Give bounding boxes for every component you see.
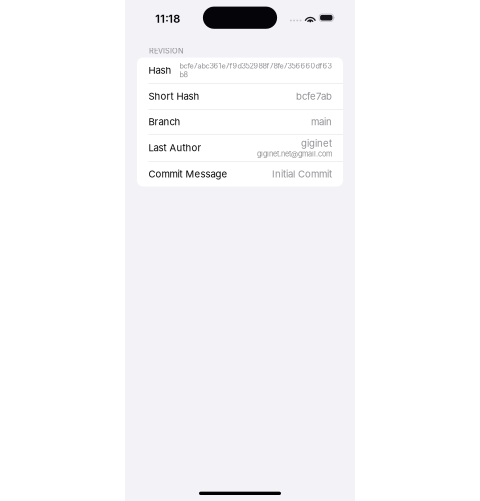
button[interactable]: Commit Message: [137, 161, 343, 186]
button[interactable]: Last Author: [137, 134, 343, 161]
button[interactable]: Branch: [137, 109, 343, 134]
staticText: REVISION: [149, 46, 184, 55]
staticText: Initial Commit: [272, 168, 332, 180]
staticText: Branch: [148, 116, 180, 128]
staticText: main: [311, 116, 332, 128]
button[interactable]: Short Hash: [137, 83, 343, 109]
staticText: Short Hash: [148, 90, 199, 102]
button[interactable]: Hash: [137, 57, 343, 83]
staticText: Hash: [148, 64, 171, 76]
staticText: bcfe7abc361e7f9d352988f78fe7356660df63b8: [179, 61, 331, 79]
staticText: giginet: [301, 137, 332, 149]
staticText: Commit Message: [148, 168, 227, 180]
staticText: 11:18: [155, 12, 180, 25]
staticText: Last Author: [148, 142, 201, 154]
staticText: bcfe7ab: [296, 90, 332, 102]
staticText: giginet.net@gmail.com: [257, 149, 332, 158]
